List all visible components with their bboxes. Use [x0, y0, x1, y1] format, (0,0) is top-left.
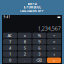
staticText: SIMPLE: [27, 2, 36, 6]
button[interactable]: 6: [32, 45, 46, 51]
button[interactable]: 0: [3, 57, 17, 63]
button[interactable]: 7: [3, 39, 17, 44]
staticText: 4: [9, 45, 11, 50]
button[interactable]: +: [47, 51, 61, 57]
staticText: 9:41: [4, 15, 11, 19]
staticText: ÷: [53, 33, 55, 38]
staticText: .: [24, 58, 25, 63]
staticText: =: [53, 58, 55, 63]
button[interactable]: AC: [3, 33, 17, 38]
button[interactable]: 8: [18, 39, 32, 44]
button[interactable]: .: [18, 57, 32, 63]
staticText: 5: [24, 45, 26, 50]
staticText: 6: [38, 45, 40, 50]
button[interactable]: ±: [18, 33, 32, 38]
staticText: 3: [38, 51, 40, 57]
button[interactable]: 1: [3, 51, 17, 57]
staticText: ⌫: [36, 58, 42, 62]
staticText: 8: [24, 39, 26, 44]
staticText: 7: [9, 39, 11, 44]
button[interactable]: 5: [18, 45, 32, 51]
staticText: +: [53, 51, 55, 57]
button[interactable]: 2: [18, 51, 32, 57]
staticText: ±: [24, 33, 26, 38]
staticText: 9: [38, 39, 40, 44]
staticText: 1: [9, 51, 11, 57]
staticText: AC: [7, 33, 12, 38]
staticText: 2: [24, 51, 26, 57]
button[interactable]: =: [47, 57, 61, 63]
staticText: 1,234,567: [38, 25, 61, 32]
button[interactable]: ×: [47, 39, 61, 44]
staticText: ×: [53, 39, 55, 44]
staticText: %: [38, 33, 41, 38]
button[interactable]: ⌫: [32, 57, 46, 63]
staticText: & POWERFUL: [23, 6, 40, 9]
button[interactable]: −: [47, 45, 61, 51]
button[interactable]: 4: [3, 45, 17, 51]
staticText: −: [53, 45, 55, 50]
button[interactable]: %: [32, 33, 46, 38]
button[interactable]: ÷: [47, 33, 61, 38]
staticText: CALCULATOR APP: [20, 9, 44, 13]
staticText: 0: [9, 58, 11, 63]
button[interactable]: 9: [32, 39, 46, 44]
button[interactable]: 3: [32, 51, 46, 57]
